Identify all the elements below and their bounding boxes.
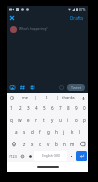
staticText: 6 (51, 105, 54, 111)
button[interactable]: Backspace (76, 138, 88, 150)
staticText: ?123 (9, 154, 17, 159)
button[interactable]: Tweet (67, 84, 85, 91)
staticText: a (15, 129, 18, 135)
staticText: l (79, 129, 81, 135)
button[interactable]: 2 (16, 102, 24, 114)
staticText: o (75, 117, 78, 123)
staticText: e (27, 117, 30, 123)
staticText: Tweet (71, 85, 82, 90)
staticText: w (18, 117, 22, 123)
button[interactable]: w (16, 114, 24, 126)
button[interactable]: Period (67, 150, 75, 162)
staticText: 7 (59, 105, 62, 111)
staticText: English (UK) (42, 154, 60, 158)
staticText: d (31, 129, 34, 135)
button[interactable]: v (44, 138, 52, 150)
button[interactable]: z (20, 138, 28, 150)
staticText: 5 (43, 105, 46, 111)
button[interactable]: Voice input (79, 94, 87, 102)
button[interactable]: x (28, 138, 36, 150)
button[interactable]: a (12, 126, 20, 138)
staticText: Drafts (70, 15, 84, 21)
staticText: t (43, 117, 45, 123)
button[interactable]: me (14, 93, 35, 102)
button[interactable]: m (68, 138, 76, 150)
staticText: I (46, 95, 48, 100)
button[interactable]: h (52, 126, 60, 138)
button[interactable]: b (52, 138, 60, 150)
staticText: b (55, 141, 58, 147)
button[interactable]: 8 (64, 102, 72, 114)
button[interactable]: 5 (40, 102, 48, 114)
staticText: n (63, 141, 66, 147)
button[interactable]: Comma (26, 150, 34, 162)
staticText: u (59, 117, 62, 123)
staticText: 1 (10, 105, 13, 111)
staticText: thanks (62, 95, 75, 100)
button[interactable]: ?123 (7, 150, 18, 162)
button[interactable]: 0 (80, 102, 88, 114)
staticText: 4 (35, 105, 38, 111)
staticText: z (23, 141, 26, 147)
staticText: 8 (67, 105, 70, 111)
button[interactable]: t (40, 114, 48, 126)
button[interactable]: u (56, 114, 64, 126)
button[interactable]: 1 (7, 102, 16, 114)
staticText: x (31, 141, 34, 147)
staticText: me (22, 95, 28, 100)
button[interactable]: o (72, 114, 80, 126)
button[interactable]: 3 (24, 102, 32, 114)
staticText: q (10, 117, 13, 123)
button[interactable]: s (20, 126, 28, 138)
staticText: v (47, 141, 50, 147)
button[interactable]: e (24, 114, 32, 126)
staticText: 87% (79, 8, 86, 12)
button[interactable]: Emoji (18, 150, 26, 162)
staticText: r (35, 117, 37, 123)
button[interactable]: Space (34, 151, 67, 161)
button[interactable]: Shift (7, 138, 20, 150)
button[interactable]: p (80, 114, 88, 126)
button[interactable]: q (7, 114, 16, 126)
staticText: h (55, 129, 58, 135)
button[interactable]: d (28, 126, 36, 138)
staticText: What's happening? (19, 27, 48, 31)
button[interactable]: j (60, 126, 68, 138)
button[interactable]: g (44, 126, 52, 138)
button[interactable]: Audience (28, 81, 36, 93)
staticText: k (71, 129, 74, 135)
button[interactable]: c (36, 138, 44, 150)
staticText: f (39, 129, 41, 135)
button[interactable]: Drafts (68, 14, 86, 22)
staticText: 0 (83, 105, 86, 111)
button[interactable]: I (36, 93, 57, 102)
button[interactable]: 7 (56, 102, 64, 114)
button[interactable]: n (60, 138, 68, 150)
staticText: c (39, 141, 42, 147)
staticText: j (63, 129, 65, 135)
staticText: 2 (19, 105, 22, 111)
staticText: g (47, 129, 50, 135)
staticText: 9 (75, 105, 78, 111)
staticText: p (83, 117, 86, 123)
button[interactable]: k (68, 126, 76, 138)
staticText: y (51, 117, 54, 123)
button[interactable]: 6 (48, 102, 56, 114)
button[interactable]: 4 (32, 102, 40, 114)
button[interactable]: Enter (76, 151, 87, 161)
staticText: i (67, 117, 69, 123)
staticText: m (70, 141, 75, 147)
button[interactable]: GIF (18, 81, 26, 93)
staticText: 3 (27, 105, 30, 111)
button[interactable]: i (64, 114, 72, 126)
button[interactable]: Add photo (8, 81, 16, 93)
button[interactable]: Close (7, 13, 17, 23)
button[interactable]: thanks (58, 93, 79, 102)
button[interactable]: l (76, 126, 84, 138)
button[interactable]: y (48, 114, 56, 126)
button[interactable]: 9 (72, 102, 80, 114)
button[interactable]: f (36, 126, 44, 138)
button[interactable]: r (32, 114, 40, 126)
staticText: s (23, 129, 26, 135)
